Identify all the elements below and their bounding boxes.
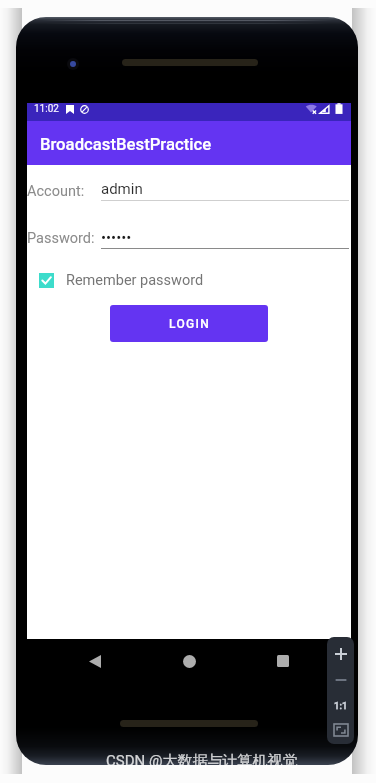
staticText: Remember password bbox=[66, 272, 204, 289]
staticText: •••••• bbox=[101, 229, 132, 247]
button[interactable]: Back bbox=[78, 644, 112, 678]
button[interactable]: Recent apps bbox=[266, 644, 300, 678]
button[interactable]: Zoom out bbox=[327, 667, 354, 692]
staticText: 11:02 bbox=[34, 103, 59, 115]
staticText: Account: bbox=[27, 183, 85, 200]
button[interactable]: Fullscreen bbox=[327, 718, 354, 742]
staticText: admin bbox=[101, 180, 143, 198]
button[interactable]: LOGIN bbox=[110, 305, 268, 342]
button[interactable]: Remember password bbox=[39, 272, 204, 289]
staticText: CSDN @大数据与计算机视觉 bbox=[106, 752, 298, 771]
button[interactable]: Actual size one to one bbox=[327, 693, 354, 718]
button[interactable]: BroadcastBestPractice bbox=[27, 121, 351, 165]
staticText: BroadcastBestPractice bbox=[40, 135, 212, 155]
button[interactable]: Home bbox=[172, 644, 206, 678]
button[interactable]: Zoom in bbox=[327, 641, 354, 666]
staticText: Password: bbox=[27, 230, 95, 247]
staticText: LOGIN bbox=[169, 317, 210, 331]
staticText: 1:1 bbox=[334, 700, 348, 711]
